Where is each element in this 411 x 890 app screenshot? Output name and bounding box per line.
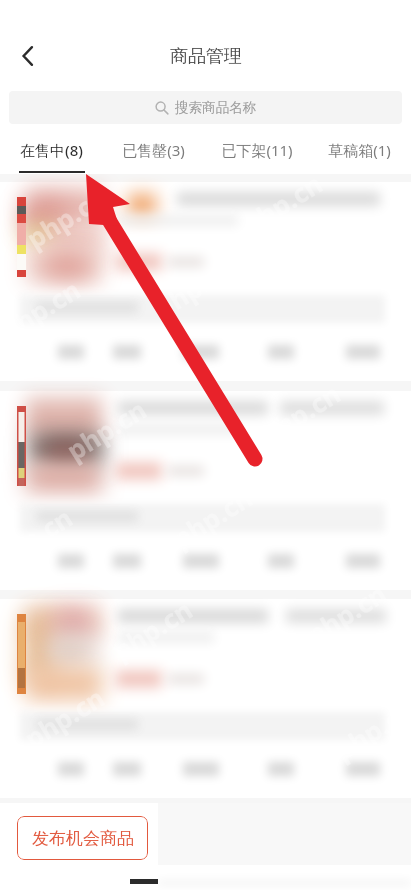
staticText: php.cn [59, 391, 153, 468]
button[interactable]: 在售中(8) [0, 128, 102, 174]
button[interactable]: Back [8, 36, 48, 76]
button[interactable]: Product action [106, 546, 148, 574]
button[interactable]: Product item [0, 391, 411, 590]
button[interactable]: Product item [0, 599, 411, 798]
button[interactable]: 已下架(11) [205, 128, 308, 174]
staticText: 在售中(8) [20, 140, 83, 160]
button[interactable]: Product action [261, 754, 301, 782]
staticText: php.cn [327, 691, 411, 768]
button[interactable]: Product action [261, 546, 301, 574]
button[interactable]: Product action [106, 754, 148, 782]
staticText: php.cn [165, 479, 259, 556]
button[interactable]: Product item [0, 182, 411, 381]
staticText: 已售罄(3) [122, 140, 185, 160]
button[interactable]: 发布机会商品 [17, 816, 148, 860]
button[interactable]: 草稿箱(1) [308, 128, 411, 174]
button[interactable]: Product action [339, 546, 387, 574]
staticText: php.cn [299, 575, 393, 652]
staticText: 草稿箱(1) [328, 140, 391, 160]
staticText: php.cn [105, 591, 199, 668]
staticText: 已下架(11) [221, 140, 293, 160]
button[interactable]: 已售罄(3) [102, 128, 205, 174]
button[interactable]: Product action [339, 337, 387, 365]
button[interactable]: Product action [339, 754, 387, 782]
staticText: php.cn [253, 375, 347, 452]
staticText: php.cn [17, 679, 111, 756]
button[interactable]: Product action [51, 754, 91, 782]
button[interactable]: Product action [176, 337, 226, 365]
staticText: php.cn [235, 165, 329, 242]
button[interactable]: Product action [51, 337, 91, 365]
button[interactable]: 搜索商品名称 [9, 91, 402, 124]
staticText: 商品管理 [170, 45, 242, 68]
staticText: php.cn [0, 271, 87, 348]
button[interactable]: Product action [51, 546, 91, 574]
button[interactable]: Product action [106, 337, 148, 365]
staticText: php.cn [0, 499, 79, 576]
staticText: php.cn [19, 179, 113, 256]
staticText: 搜索商品名称 [175, 99, 256, 116]
staticText: php.cn [147, 249, 241, 326]
button[interactable]: Product action [176, 754, 226, 782]
button[interactable]: Product action [261, 337, 301, 365]
button[interactable]: Product action [176, 546, 226, 574]
staticText: 发布机会商品 [32, 828, 134, 849]
